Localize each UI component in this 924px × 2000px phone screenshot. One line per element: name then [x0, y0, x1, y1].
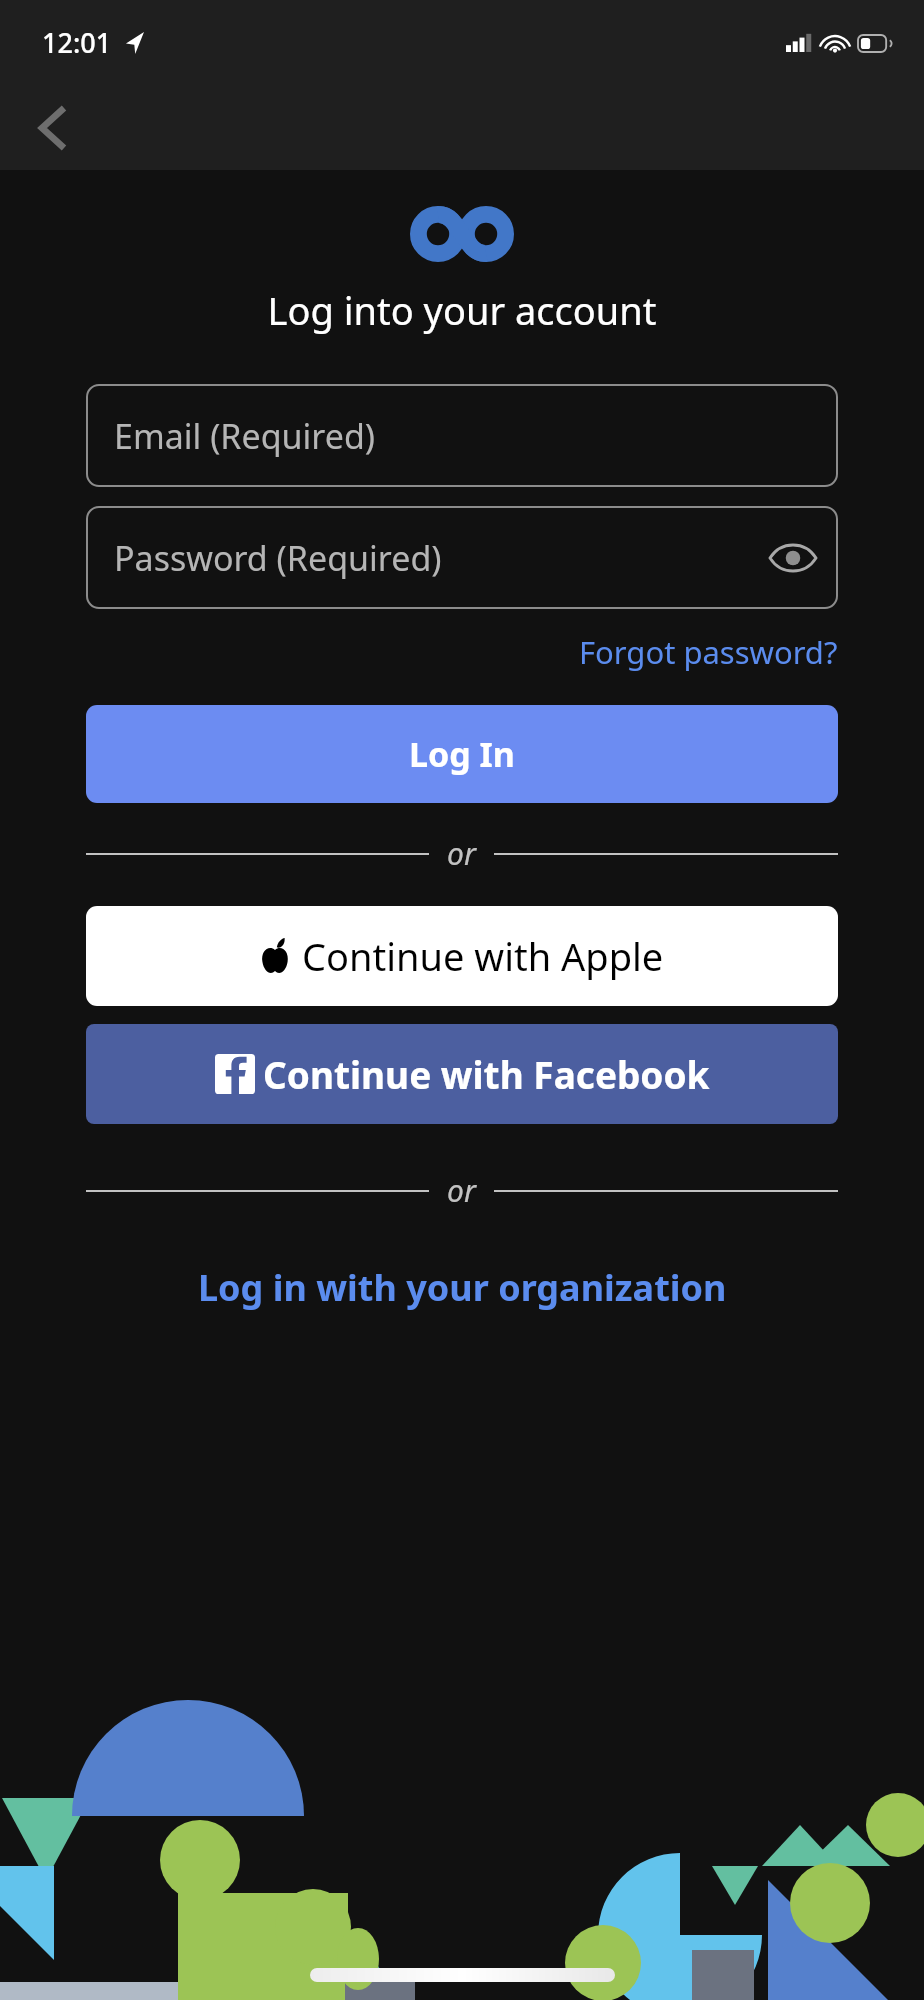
staticText: Log into your account	[0, 284, 924, 336]
staticText: Forgot password?	[579, 631, 838, 673]
staticText: Continue with Apple	[302, 930, 664, 982]
staticText: Continue with Facebook	[263, 1049, 710, 1099]
staticText: Log in with your organization	[198, 1263, 727, 1312]
button[interactable]: Log In	[86, 705, 838, 803]
button[interactable]: Continue with Facebook	[86, 1024, 838, 1124]
staticText: or	[447, 1170, 476, 1211]
staticText: 12:01	[42, 24, 112, 61]
button[interactable]: Show password	[762, 527, 824, 589]
staticText: Email (Required)	[114, 413, 376, 459]
button[interactable]: Back	[18, 93, 88, 163]
button[interactable]: Email (Required)	[86, 384, 838, 487]
staticText: or	[447, 833, 476, 874]
staticText: Password (Required)	[114, 535, 442, 581]
button[interactable]: Log in with your organization	[178, 1253, 747, 1322]
button[interactable]: Forgot password?	[571, 623, 846, 681]
staticText: Log In	[409, 731, 515, 777]
button[interactable]: Continue with Apple	[86, 906, 838, 1006]
button[interactable]: Password (Required)	[86, 506, 838, 609]
